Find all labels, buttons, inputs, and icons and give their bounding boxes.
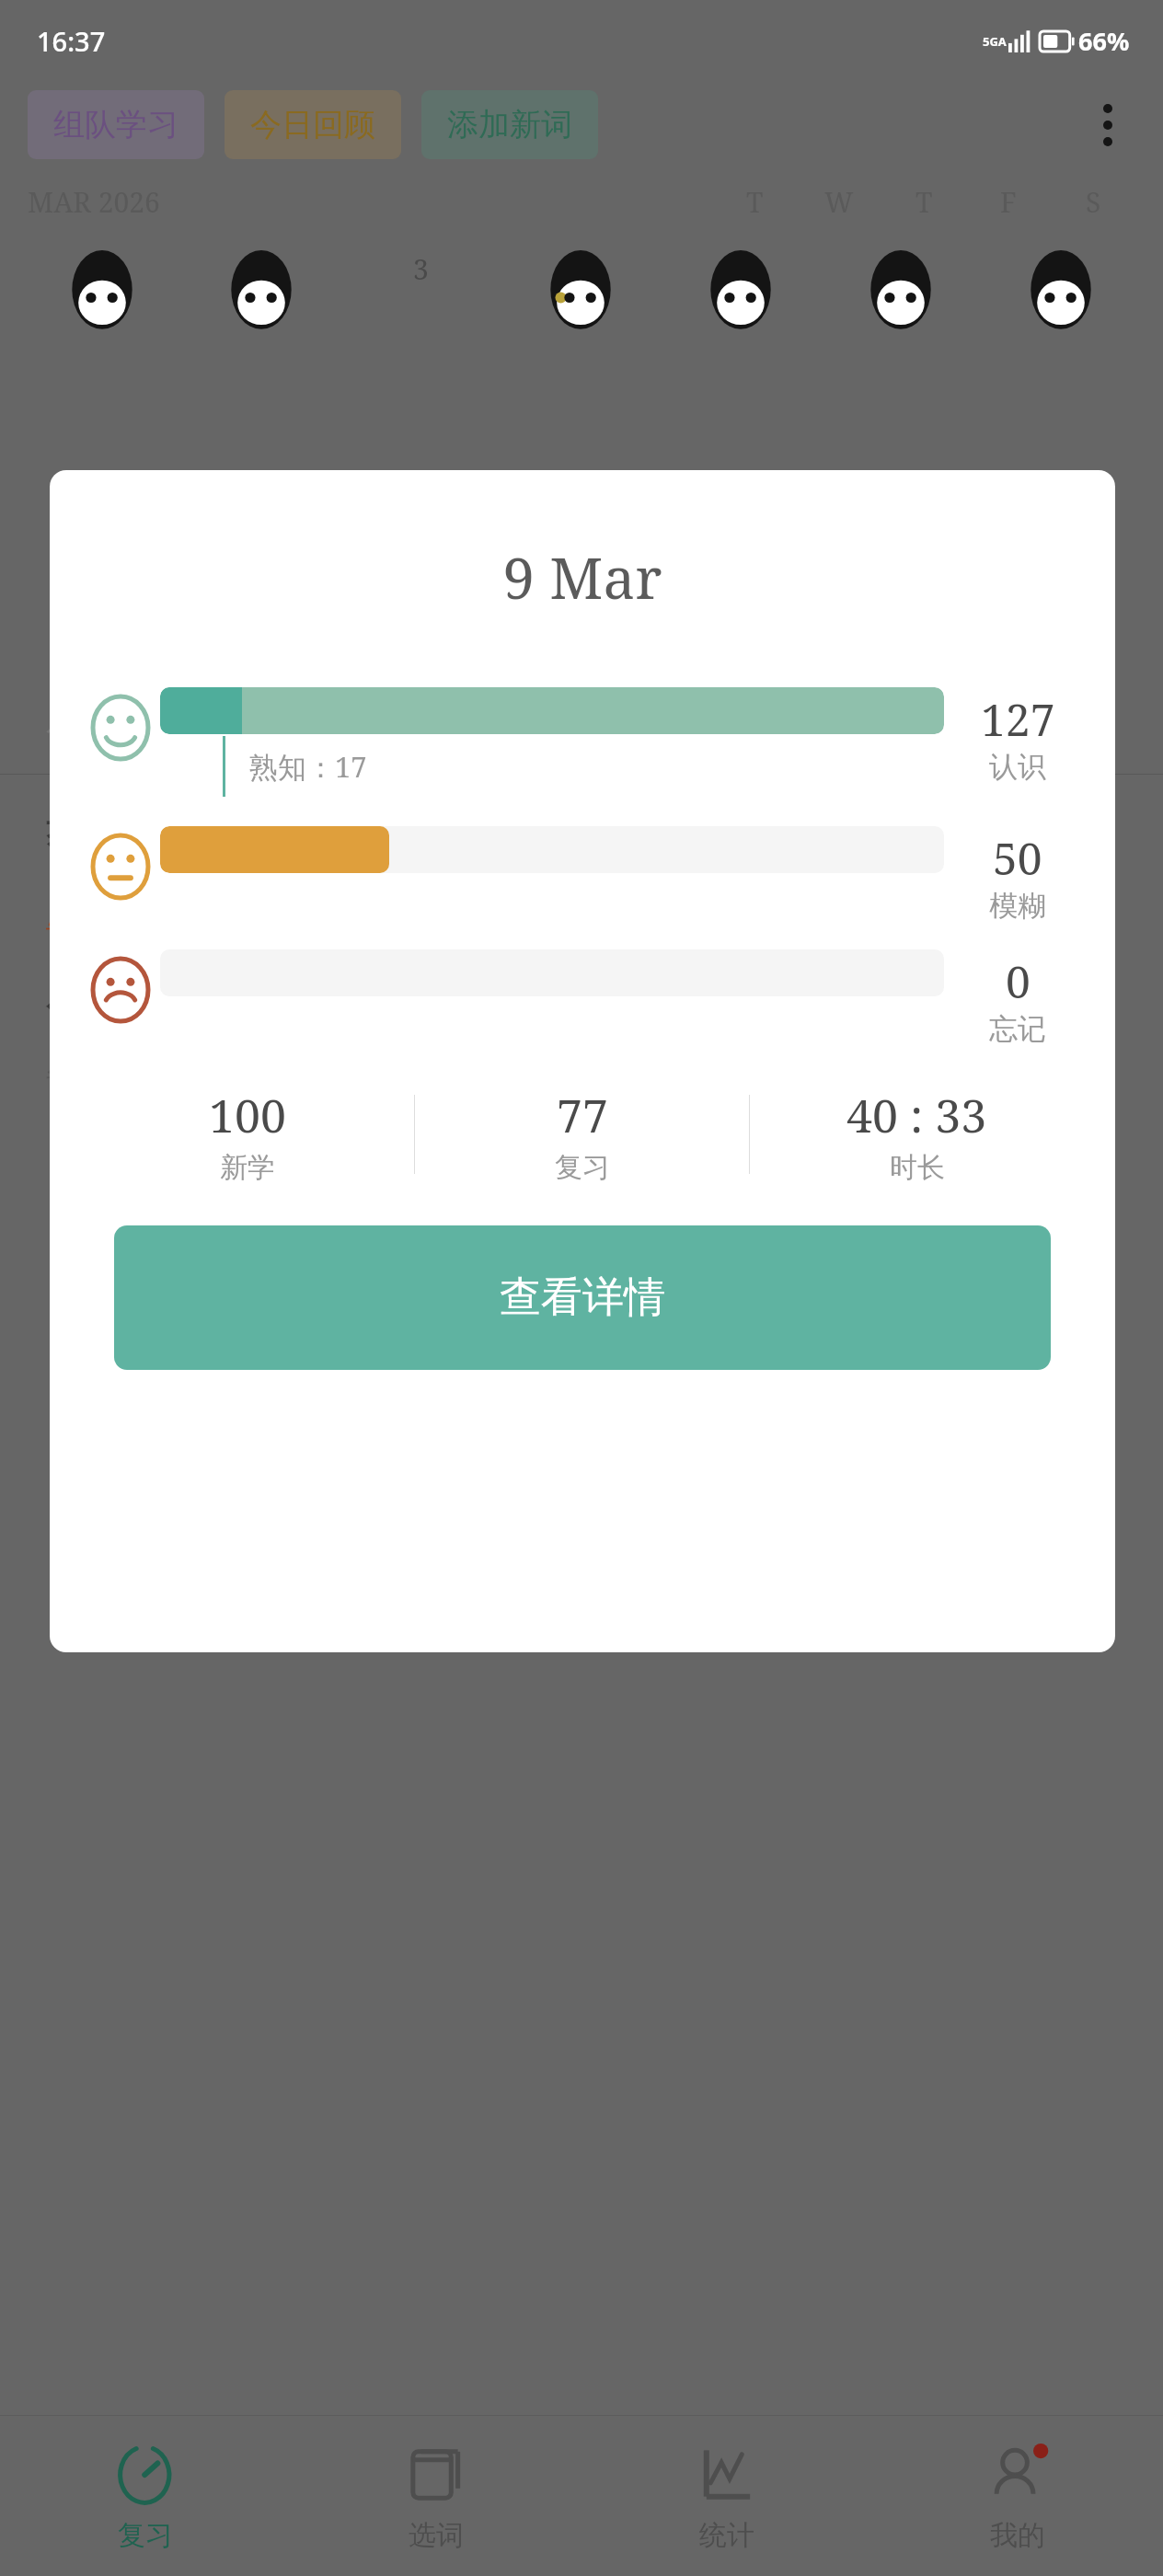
staticText: 66% [1078, 24, 1130, 58]
staticText: 每日签到时段为当天 04:00:00 至次日 03:59:59 [46, 1054, 697, 1097]
button[interactable]: 我的 [872, 2416, 1163, 2576]
staticText: F [1000, 183, 1017, 221]
staticText: 忘记 [989, 1011, 1046, 1047]
staticText: 77 [557, 1084, 608, 1146]
staticText: 认识 [989, 749, 1046, 785]
staticText: 5GA [983, 33, 1007, 50]
staticText: 点击此处 分享好友，马上领 4800 单词上限。 [46, 889, 674, 931]
staticText: 统计 [699, 2518, 754, 2553]
staticText: 新学 [220, 1150, 275, 1185]
staticText: T [746, 183, 764, 221]
button[interactable]: More options [1075, 92, 1141, 158]
button[interactable]: 统计 [581, 2416, 872, 2576]
button[interactable]: 选词 [291, 2416, 581, 2576]
button[interactable]: 复习 [0, 2416, 291, 2576]
staticText: 公告栏 | 你的UID：23302179 [46, 708, 452, 750]
staticText: 查看详情 [500, 1271, 665, 1324]
staticText: 选词 [409, 2518, 464, 2553]
staticText: 小窍门 [46, 979, 151, 1023]
staticText: 0 [1006, 951, 1031, 1011]
staticText: T [915, 183, 933, 221]
button[interactable]: 查看详情 [114, 1225, 1051, 1370]
staticText: 添加新词 [447, 105, 572, 144]
staticText: 时长 [890, 1150, 945, 1185]
staticText: 今日回顾 [250, 105, 375, 144]
staticText: 熟知：17 [249, 747, 367, 786]
button[interactable]: 组队学习 [28, 90, 204, 159]
staticText: 100 [209, 1084, 286, 1146]
staticText: 获奖励 [46, 813, 151, 857]
staticText: W [824, 183, 854, 221]
staticText: 40 : 33 [846, 1084, 987, 1146]
staticText: 50 [993, 828, 1042, 888]
staticText: 复习 [555, 1150, 610, 1185]
staticText: 模糊 [989, 888, 1046, 924]
staticText: 127 [981, 689, 1055, 749]
staticText: 组队学习 [53, 105, 178, 144]
staticText: 9 Mar [502, 538, 662, 615]
staticText: 16:37 [37, 23, 106, 59]
staticText: 我的 [990, 2518, 1045, 2553]
staticText: 复习 [118, 2518, 173, 2553]
staticText: 3 [413, 250, 429, 288]
button[interactable]: 今日回顾 [225, 90, 401, 159]
button[interactable]: 添加新词 [421, 90, 598, 159]
staticText: MAR 2026 [28, 183, 160, 221]
staticText: S [1086, 183, 1101, 221]
